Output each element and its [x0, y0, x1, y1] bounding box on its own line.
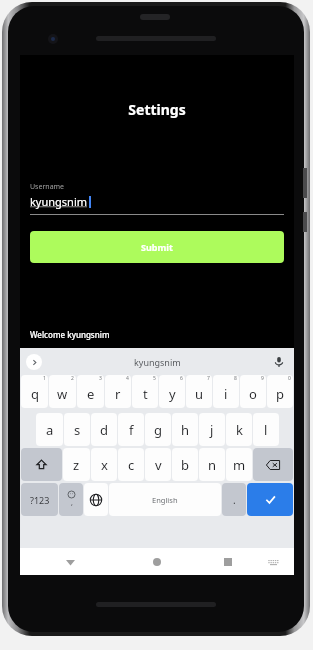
- button[interactable]: h: [172, 413, 198, 446]
- staticText: i: [224, 385, 228, 403]
- button[interactable]: 5: [132, 375, 158, 408]
- staticText: 6: [180, 375, 183, 382]
- button[interactable]: x: [91, 448, 117, 481]
- staticText: Settings: [20, 100, 294, 119]
- staticText: 7: [207, 375, 210, 382]
- button[interactable]: m: [226, 448, 252, 481]
- button[interactable]: Shift: [21, 448, 62, 481]
- staticText: Welcome kyungsnim: [30, 329, 110, 340]
- button[interactable]: j: [199, 413, 225, 446]
- button[interactable]: n: [199, 448, 225, 481]
- staticText: w: [57, 385, 68, 403]
- staticText: .: [233, 493, 236, 507]
- button[interactable]: f: [118, 413, 144, 446]
- staticText: p: [276, 385, 284, 403]
- button[interactable]: 4: [105, 375, 131, 408]
- staticText: Submit: [141, 241, 173, 253]
- button[interactable]: 0: [267, 375, 293, 408]
- staticText: 8: [234, 375, 237, 382]
- button[interactable]: 9: [240, 375, 266, 408]
- staticText: kyungsnim: [30, 194, 88, 209]
- staticText: o: [249, 385, 257, 403]
- staticText: 2: [71, 375, 74, 382]
- button[interactable]: Expand suggestions: [26, 354, 42, 370]
- staticText: z: [73, 456, 80, 474]
- staticText: kyungsnim: [134, 356, 181, 368]
- button[interactable]: s: [64, 413, 90, 446]
- button[interactable]: Enter: [247, 483, 293, 516]
- staticText: 5: [153, 375, 156, 382]
- button[interactable]: c: [118, 448, 144, 481]
- staticText: 3: [99, 375, 102, 382]
- staticText: k: [236, 421, 243, 439]
- staticText: ?123: [30, 494, 50, 506]
- button[interactable]: English: [109, 483, 221, 516]
- staticText: Username: [30, 182, 65, 192]
- staticText: f: [129, 421, 134, 439]
- staticText: ,: [71, 498, 73, 508]
- button[interactable]: k: [226, 413, 252, 446]
- staticText: 4: [126, 375, 129, 382]
- button[interactable]: 2: [49, 375, 76, 408]
- staticText: d: [100, 421, 108, 439]
- staticText: l: [264, 421, 268, 439]
- staticText: g: [154, 421, 162, 439]
- staticText: x: [101, 456, 108, 474]
- button[interactable]: d: [91, 413, 117, 446]
- button[interactable]: .: [222, 483, 246, 516]
- staticText: r: [115, 385, 121, 403]
- staticText: j: [210, 421, 214, 439]
- button[interactable]: g: [145, 413, 171, 446]
- staticText: 1: [43, 375, 46, 382]
- button[interactable]: a: [36, 413, 63, 446]
- button[interactable]: 7: [186, 375, 212, 408]
- button[interactable]: 6: [159, 375, 185, 408]
- button[interactable]: Switch keyboard: [264, 553, 282, 571]
- staticText: English: [152, 495, 178, 505]
- button[interactable]: Emoji: [59, 483, 83, 516]
- staticText: 0: [288, 375, 291, 382]
- button[interactable]: l: [253, 413, 279, 446]
- button[interactable]: 1: [21, 375, 48, 408]
- button[interactable]: b: [172, 448, 198, 481]
- staticText: b: [181, 456, 189, 474]
- button[interactable]: ?123: [21, 483, 58, 516]
- button[interactable]: z: [63, 448, 90, 481]
- button[interactable]: Submit: [30, 231, 284, 263]
- staticText: v: [155, 456, 162, 474]
- button[interactable]: Voice input: [272, 355, 286, 369]
- staticText: 9: [261, 375, 264, 382]
- button[interactable]: v: [145, 448, 171, 481]
- button[interactable]: Backspace: [253, 448, 293, 481]
- staticText: a: [46, 421, 54, 439]
- staticText: y: [169, 385, 176, 403]
- staticText: n: [208, 456, 217, 474]
- button[interactable]: Home: [147, 552, 167, 572]
- button[interactable]: Recent apps: [218, 552, 238, 572]
- button[interactable]: Back: [60, 552, 80, 572]
- staticText: u: [195, 385, 204, 403]
- staticText: t: [143, 385, 148, 403]
- button[interactable]: 8: [213, 375, 239, 408]
- staticText: h: [181, 421, 190, 439]
- staticText: m: [233, 456, 246, 474]
- staticText: s: [74, 421, 81, 439]
- button[interactable]: Change keyboard language: [84, 483, 108, 516]
- staticText: e: [87, 385, 95, 403]
- staticText: q: [31, 385, 39, 403]
- staticText: c: [128, 456, 135, 474]
- button[interactable]: 3: [77, 375, 104, 408]
